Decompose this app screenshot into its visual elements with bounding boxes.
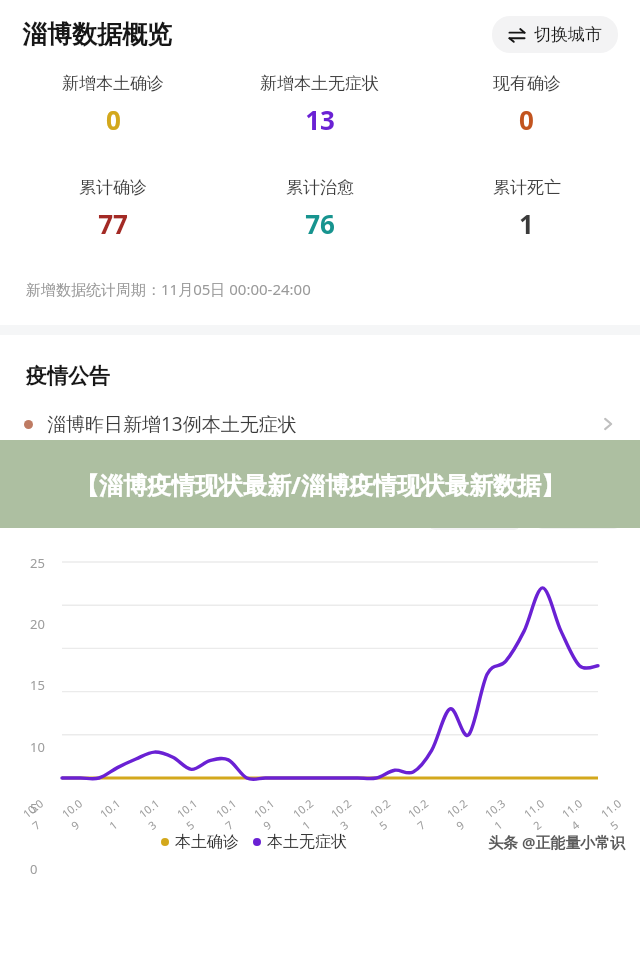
staticText: 10.25 [366,793,405,833]
button[interactable]: 累计死亡 [423,177,630,241]
staticText: 新增本土无症状 [260,73,379,94]
staticText: 10.15 [173,793,212,833]
staticText: 淄博数据概览 [22,19,172,50]
other: 切换城市 [508,26,526,44]
staticText: 本土无症状 [267,832,347,852]
staticText: 0 [30,860,38,878]
staticText: 10.29 [443,793,482,833]
staticText: 10.11 [96,793,135,833]
staticText: 77 [98,206,128,241]
staticText: 10.09 [58,793,97,833]
button[interactable]: 本土确诊 [161,832,239,852]
staticText: 0 [106,102,121,137]
button[interactable]: 累计确诊 [10,177,216,241]
staticText: 10.17 [212,793,251,833]
staticText: 10 [30,738,45,756]
staticText: 新增本土确诊 [62,73,164,94]
button[interactable]: 30 天 [429,489,520,530]
staticText: 76 [305,206,335,241]
staticText: 15 [30,676,45,694]
staticText: 10.27 [404,793,443,833]
staticText: 头条 @正能量小常识 [488,832,626,852]
staticText: 累计治愈 [286,177,354,198]
staticText: 0 [519,102,534,137]
staticText: 累计确诊 [79,177,147,198]
staticText: 现有确诊 [493,73,561,94]
staticText: 切换城市 [534,24,602,45]
staticText: 10.21 [289,793,328,833]
staticText: 本土确诊 [175,832,239,852]
button[interactable]: 切换城市 [492,16,618,53]
staticText: 1 [519,206,534,241]
staticText: 10.31 [481,793,520,833]
staticText: 5 [30,799,38,817]
staticText: 10.23 [327,793,366,833]
staticText: 累计死亡 [493,177,561,198]
button[interactable]: 新增本土无症状 [216,73,423,137]
staticText: 10.13 [135,793,174,833]
staticText: 13 [305,102,335,137]
staticText: 20 [30,615,45,633]
staticText: 11.05 [597,793,636,833]
staticText: 疫情公告 [26,363,110,389]
staticText: 10.07 [19,793,58,833]
button[interactable]: 现有确诊 [423,73,630,137]
button[interactable]: 新增 [536,490,620,529]
staticText: 25 [30,554,45,572]
button[interactable]: 累计治愈 [216,177,423,241]
staticText: 新增数据统计周期：11月05日 00:00-24:00 [26,279,311,299]
staticText: 淄博昨日新增13例本土无症状 [47,411,297,437]
button[interactable]: 本土无症状 [253,832,347,852]
button[interactable]: 淄博昨日新增13例本土无症状 [0,411,640,437]
staticText: 11.02 [520,793,559,833]
staticText: 10.19 [250,793,289,833]
button[interactable]: 新增本土确诊 [10,73,216,137]
staticText: 11.04 [558,793,597,833]
staticText: 【淄博疫情现状最新/淄博疫情现状最新数据】 [75,468,565,501]
